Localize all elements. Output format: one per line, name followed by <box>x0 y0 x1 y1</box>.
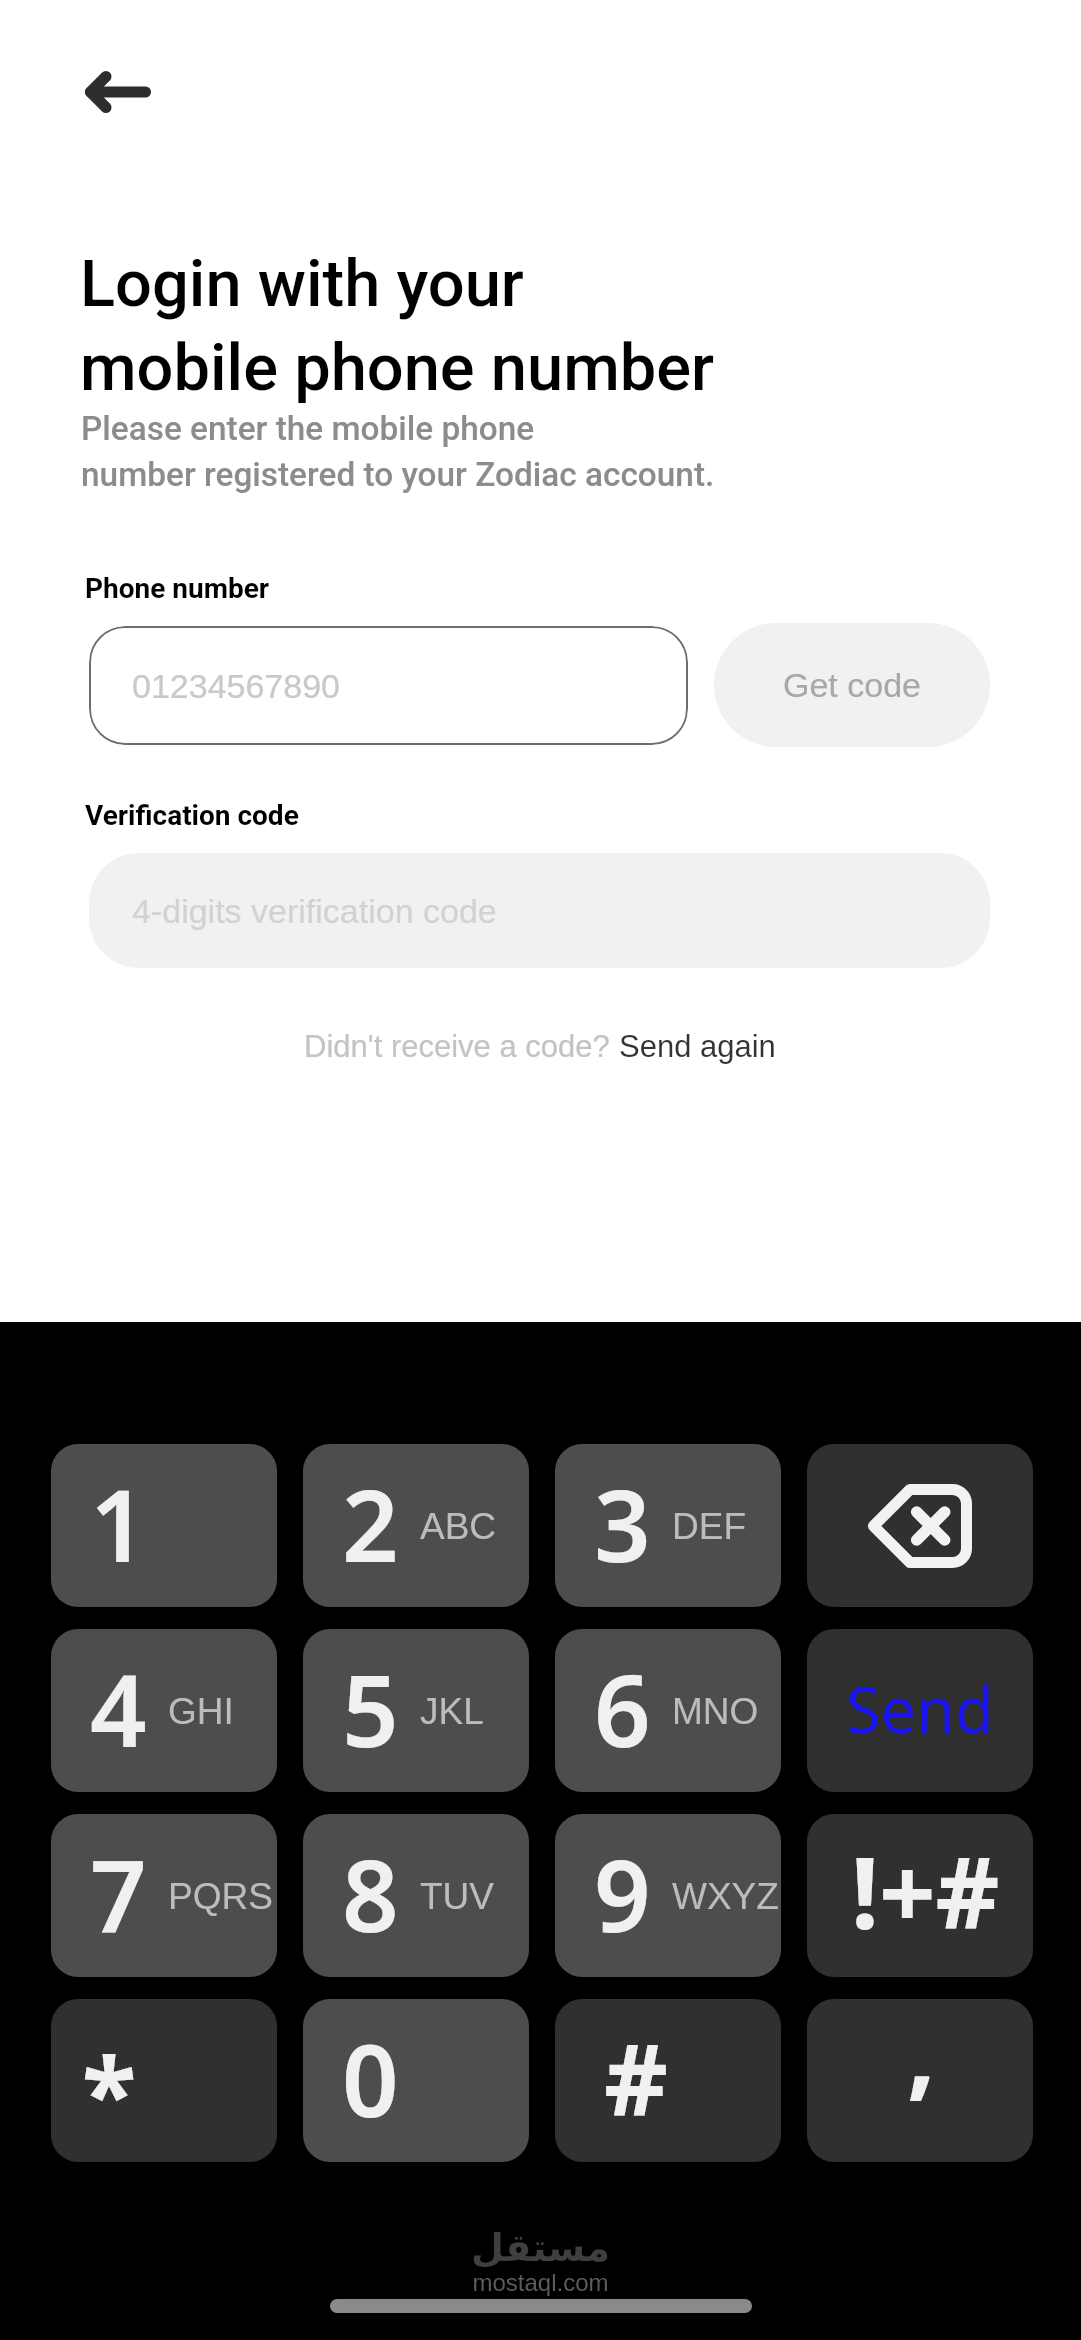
button[interactable]: Send <box>807 1629 1033 1792</box>
button[interactable]: 7 PQRS <box>51 1814 277 1977</box>
staticText: Verification code <box>85 799 299 832</box>
staticText: 3 <box>594 1456 651 1591</box>
staticText: 01234567890 <box>132 667 341 705</box>
staticText: Please enter the mobile phone number reg… <box>81 409 715 495</box>
staticText: ABC <box>420 1506 497 1547</box>
button[interactable]: 9 WXYZ <box>555 1814 781 1977</box>
button[interactable]: Hash <box>555 1999 781 2162</box>
staticText: 6 <box>594 1641 651 1776</box>
staticText: TUV <box>420 1876 494 1917</box>
staticText: Send <box>846 1666 994 1752</box>
staticText: # <box>604 2010 668 2145</box>
button[interactable]: 5 JKL <box>303 1629 529 1792</box>
button[interactable]: 8 TUV <box>303 1814 529 1977</box>
button[interactable]: Back <box>58 46 178 138</box>
staticText: 7 <box>90 1826 147 1961</box>
button[interactable]: Get code <box>714 623 990 747</box>
button[interactable]: 3 DEF <box>555 1444 781 1607</box>
staticText: PQRS <box>168 1876 273 1917</box>
staticText: , <box>907 1999 936 2117</box>
staticText: 2 <box>342 1456 399 1591</box>
button[interactable]: 6 MNO <box>555 1629 781 1792</box>
staticText: 5 <box>342 1641 399 1776</box>
button[interactable]: 4-digits verification code <box>89 853 990 968</box>
staticText: !+# <box>851 1823 1000 1958</box>
button[interactable]: Backspace <box>807 1444 1033 1607</box>
staticText: Get code <box>783 666 921 704</box>
button[interactable]: Comma <box>807 1999 1033 2162</box>
button[interactable]: Symbols <box>807 1814 1033 1977</box>
staticText: MNO <box>672 1691 759 1732</box>
staticText: Phone number <box>85 572 270 605</box>
button[interactable]: 0 <box>303 1999 529 2162</box>
staticText: 9 <box>594 1826 651 1961</box>
button[interactable]: 2 ABC <box>303 1444 529 1607</box>
staticText: 4 <box>90 1641 147 1776</box>
button[interactable]: 01234567890 <box>89 626 688 745</box>
button[interactable]: Star <box>51 1999 277 2162</box>
staticText: Didn't receive a code? <box>304 1029 619 1064</box>
staticText: DEF <box>672 1506 746 1547</box>
button[interactable]: 1 <box>51 1444 277 1607</box>
staticText: JKL <box>420 1691 484 1732</box>
staticText: 8 <box>342 1826 399 1961</box>
staticText: GHI <box>168 1691 234 1732</box>
staticText: * <box>82 2024 137 2160</box>
staticText: mostaql.com <box>472 2269 609 2296</box>
button[interactable]: Send again <box>619 1029 776 1064</box>
staticText: 0 <box>342 2011 399 2146</box>
staticText: 1 <box>90 1456 147 1591</box>
staticText: Send again <box>619 1029 776 1064</box>
staticText: 4-digits verification code <box>132 892 497 930</box>
button[interactable]: 4 GHI <box>51 1629 277 1792</box>
staticText: مستقل <box>471 2226 610 2270</box>
staticText: Login with your mobile phone number <box>80 246 715 406</box>
staticText: WXYZ <box>672 1876 779 1917</box>
